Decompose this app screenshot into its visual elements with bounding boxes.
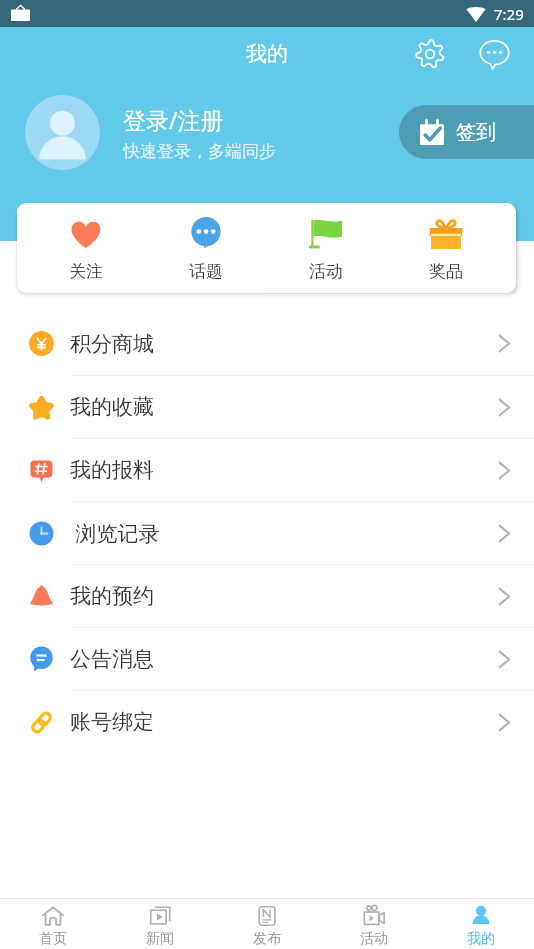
staticText: 我的预约 [70,583,154,609]
staticText: 登录/注册 [123,104,224,135]
button[interactable]: 我的报料 [0,439,534,501]
button[interactable]: 活动 [266,203,386,293]
staticText: 新闻 [146,930,174,948]
button[interactable]: 发布 [213,899,320,949]
button[interactable]: 新闻 [106,899,213,949]
staticText: 活动 [360,930,388,948]
button[interactable]: 签到 [399,105,534,159]
button[interactable]: 我的收藏 [0,376,534,438]
button[interactable]: 我的 [427,899,534,949]
button[interactable]: 奖品 [386,203,506,293]
staticText: 我的报料 [70,457,154,483]
button[interactable]: 浏览记录 [0,502,534,564]
staticText: 7:29 [494,4,524,24]
button[interactable]: 活动 [320,899,427,949]
button[interactable]: 话题 [146,203,266,293]
staticText: 快速登录，多端同步 [123,141,276,162]
button[interactable]: 积分商城 [0,312,534,375]
staticText: 话题 [189,261,223,282]
button[interactable]: Messages [472,32,516,76]
staticText: 活动 [309,261,343,282]
staticText: 签到 [456,120,496,145]
button[interactable]: Avatar [25,95,100,170]
staticText: 发布 [253,930,281,948]
staticText: 首页 [39,930,67,948]
button[interactable]: 我的预约 [0,565,534,627]
button[interactable]: 首页 [0,899,106,949]
staticText: 我的收藏 [70,394,154,420]
staticText: 账号绑定 [70,709,154,735]
staticText: 关注 [69,261,103,282]
button[interactable]: 账号绑定 [0,691,534,753]
staticText: 我的 [246,41,288,67]
button[interactable]: 关注 [26,203,146,293]
button[interactable]: 公告消息 [0,628,534,690]
staticText: 浏览记录 [70,519,160,548]
staticText: 公告消息 [70,646,154,672]
staticText: 积分商城 [70,331,154,357]
button[interactable]: Settings [408,32,452,76]
staticText: 我的 [467,930,495,948]
staticText: 奖品 [429,261,463,282]
